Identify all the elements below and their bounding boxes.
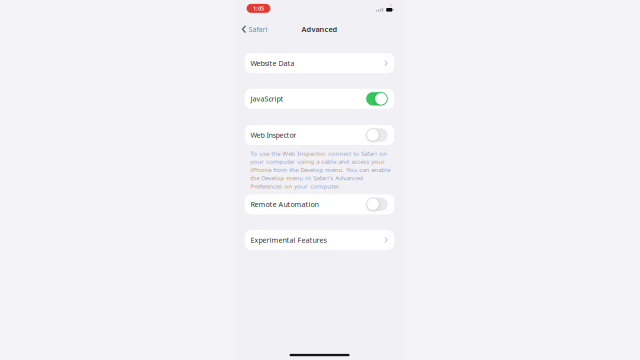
staticText: Experimental Features	[250, 235, 326, 245]
button[interactable]: Website Data	[245, 53, 394, 73]
staticText: Web Inspector	[250, 130, 296, 140]
staticText: Advanced	[302, 24, 338, 34]
staticText: Safari	[248, 24, 267, 34]
staticText: JavaScript	[250, 94, 283, 104]
button[interactable]: Remote Automation	[245, 194, 394, 214]
button[interactable]: Web Inspector	[245, 125, 394, 145]
button[interactable]: JavaScript	[245, 89, 394, 109]
staticText: 1:05	[253, 5, 264, 12]
staticText: Remote Automation	[250, 200, 318, 209]
staticText: Website Data	[250, 58, 294, 68]
staticText: To use the Web Inspector, connect to Saf…	[250, 149, 390, 190]
button[interactable]: Experimental Features	[245, 230, 394, 250]
button[interactable]: Safari	[242, 22, 270, 36]
